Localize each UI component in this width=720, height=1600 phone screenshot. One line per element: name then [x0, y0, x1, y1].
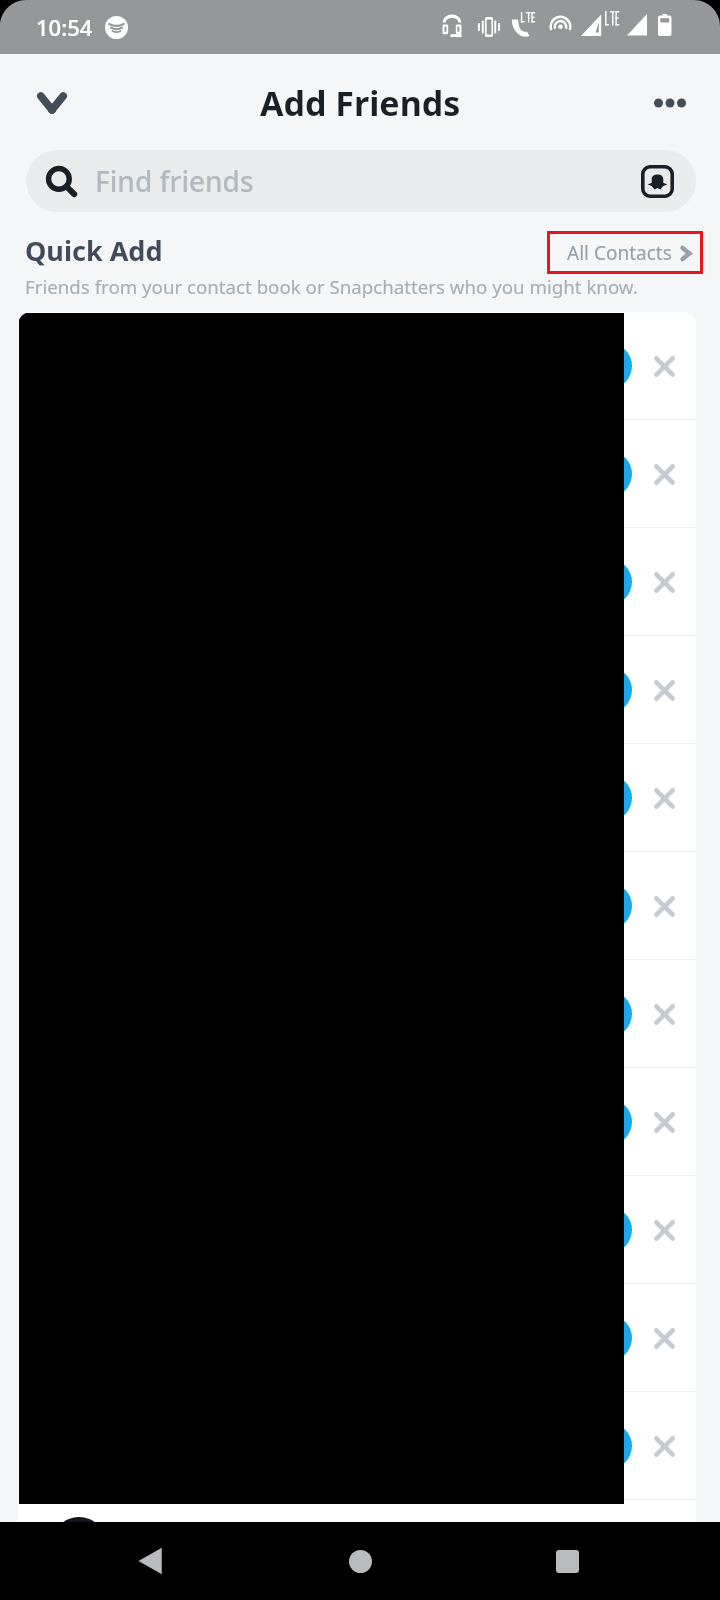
staticText: All Contacts — [567, 240, 672, 266]
button[interactable]: Remove suggestion — [632, 528, 696, 636]
staticText: Find friends — [95, 162, 254, 200]
staticText: Add Friends — [260, 80, 461, 126]
button[interactable]: Remove suggestion — [632, 960, 696, 1068]
button[interactable]: More options — [638, 71, 702, 135]
button[interactable]: Remove suggestion — [632, 852, 696, 960]
button[interactable]: Remove suggestion — [632, 1392, 696, 1500]
button[interactable]: Remove suggestion — [632, 1176, 696, 1284]
button[interactable]: Remove suggestion — [632, 636, 696, 744]
button[interactable]: Remove suggestion — [632, 1284, 696, 1392]
button[interactable]: Jordan Mills — [18, 312, 696, 420]
button[interactable]: Rowan Blake — [18, 1392, 696, 1500]
button[interactable]: Remove suggestion — [632, 312, 696, 420]
button[interactable]: Remove suggestion — [632, 420, 696, 528]
button[interactable]: Remove suggestion — [632, 744, 696, 852]
button[interactable]: Back — [116, 1527, 184, 1595]
button[interactable]: Parker Wells — [18, 1284, 696, 1392]
button[interactable]: Taylor Quinn — [18, 852, 696, 960]
staticText: Quick Add — [25, 232, 163, 269]
button[interactable]: Casey Lee — [18, 420, 696, 528]
button[interactable]: Skyler Nash — [18, 1176, 696, 1284]
button[interactable]: Home — [326, 1527, 394, 1595]
staticText: 10:54 — [36, 12, 93, 42]
button[interactable]: Scan Snapcode — [637, 161, 677, 201]
button[interactable]: Find friends — [26, 150, 696, 212]
button[interactable]: Morgan Reid — [18, 744, 696, 852]
button[interactable]: Avery Brooks — [18, 636, 696, 744]
button[interactable]: Riley Shaw — [18, 528, 696, 636]
button[interactable] — [18, 1500, 696, 1522]
button[interactable]: Collapse — [20, 71, 84, 135]
button[interactable]: Drew Hayes — [18, 1068, 696, 1176]
staticText: Friends from your contact book or Snapch… — [25, 274, 638, 299]
button[interactable]: Recent apps — [533, 1527, 601, 1595]
button[interactable]: Remove suggestion — [632, 1068, 696, 1176]
button[interactable]: Jamie Fox — [18, 960, 696, 1068]
button[interactable]: All Contacts — [547, 231, 703, 274]
